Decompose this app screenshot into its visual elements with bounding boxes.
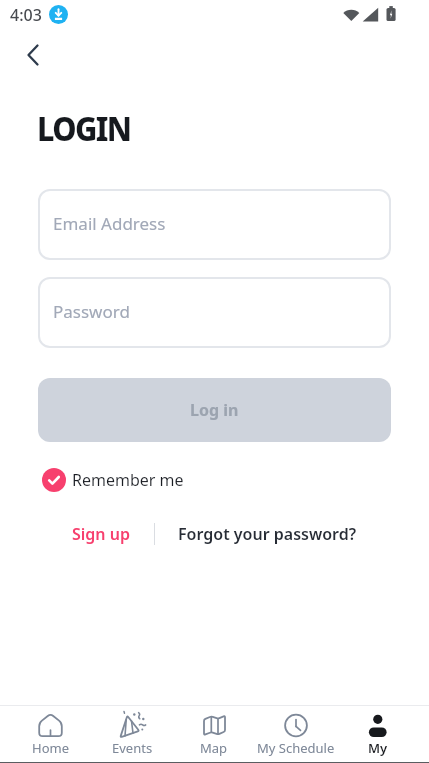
staticText: LOGIN [37, 106, 131, 146]
staticText: Map [200, 739, 228, 757]
button[interactable]: My Schedule [255, 706, 337, 763]
button[interactable]: My [337, 706, 419, 763]
staticText: Email Address [53, 212, 166, 235]
button[interactable]: Sign up [72, 523, 130, 545]
button[interactable]: Log in [38, 378, 391, 442]
staticText: Password [53, 300, 130, 323]
button[interactable]: Remember me [42, 468, 184, 492]
button[interactable]: Events [91, 706, 173, 763]
staticText: Home [32, 739, 69, 757]
staticText: Remember me [72, 469, 184, 491]
staticText: My [368, 739, 388, 757]
staticText: 4:03 [10, 4, 42, 26]
button[interactable]: Password [38, 277, 391, 348]
staticText: Forgot your password? [178, 523, 357, 545]
staticText: Log in [190, 399, 239, 421]
button[interactable]: Map [173, 706, 255, 763]
staticText: Sign up [72, 523, 130, 545]
button[interactable]: Home [10, 706, 91, 763]
button[interactable]: Email Address [38, 189, 391, 260]
staticText: Events [112, 739, 153, 757]
button[interactable]: Forgot your password? [178, 523, 357, 545]
button[interactable] [11, 33, 55, 77]
staticText: My Schedule [257, 739, 335, 757]
